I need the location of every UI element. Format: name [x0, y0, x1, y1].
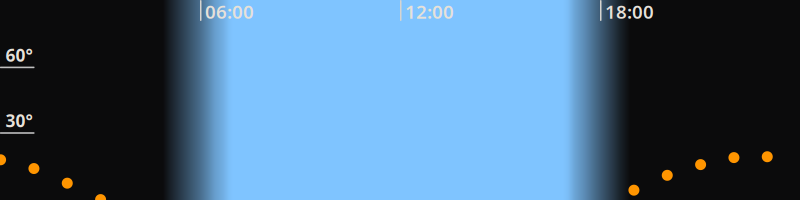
staticText: 18:00: [605, 0, 654, 24]
staticText: 60°: [5, 43, 32, 66]
staticText: 30°: [5, 109, 32, 132]
staticText: 12:00: [405, 0, 454, 24]
staticText: 06:00: [205, 0, 254, 24]
